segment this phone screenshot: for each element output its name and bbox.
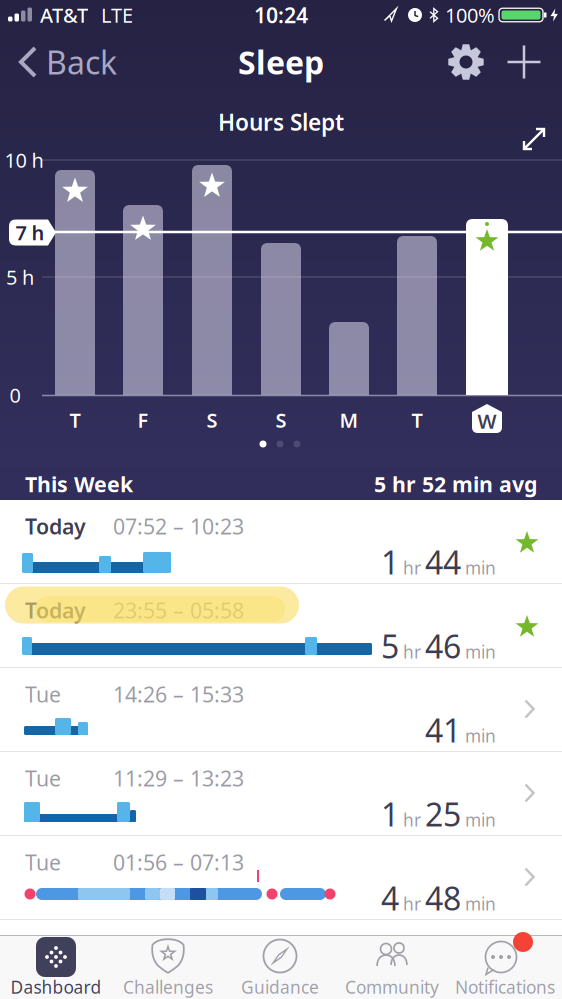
staticText: T: [411, 407, 422, 433]
staticText: S: [206, 407, 217, 433]
staticText: min: [465, 892, 496, 915]
staticText: Tue: [25, 680, 61, 708]
staticText: F: [137, 407, 148, 433]
staticText: min: [465, 808, 496, 831]
button[interactable]: Back: [7, 41, 117, 83]
button[interactable]: Notifications: [449, 935, 561, 999]
staticText: 1: [381, 793, 399, 835]
staticText: Hours Slept: [218, 107, 344, 137]
staticText: 5: [381, 625, 399, 667]
staticText: 10 h: [4, 147, 43, 173]
staticText: min: [465, 556, 496, 579]
staticText: Today: [25, 596, 86, 624]
staticText: Tue: [25, 848, 61, 876]
staticText: min: [465, 724, 496, 747]
staticText: 01:56 – 07:13: [113, 848, 244, 876]
button[interactable]: Guidance: [224, 935, 336, 999]
staticText: This Week: [25, 470, 133, 498]
staticText: Notifications: [455, 975, 555, 998]
staticText: Sleep: [238, 41, 324, 83]
staticText: 11:29 – 13:23: [113, 764, 244, 792]
staticText: Back: [46, 41, 117, 83]
button[interactable]: Settings: [446, 42, 486, 82]
staticText: Dashboard: [10, 975, 101, 998]
button[interactable]: Add: [504, 42, 544, 82]
staticText: Today: [25, 512, 86, 540]
button[interactable]: Tue: [0, 668, 562, 751]
staticText: 07:52 – 10:23: [113, 512, 244, 540]
button[interactable]: Tue: [0, 836, 562, 919]
staticText: 23:55 – 05:58: [113, 596, 244, 624]
staticText: M: [339, 407, 358, 433]
button[interactable]: Today: [0, 500, 562, 583]
staticText: 5 hr 52 min avg: [374, 470, 537, 498]
button[interactable]: Expand chart: [523, 128, 545, 150]
staticText: 44: [425, 541, 461, 583]
staticText: 48: [425, 877, 461, 919]
button[interactable]: Challenges: [112, 935, 224, 999]
button[interactable]: Community: [336, 935, 448, 999]
staticText: AT&T: [40, 2, 88, 28]
staticText: W: [477, 408, 496, 434]
staticText: 1: [381, 541, 399, 583]
staticText: Community: [345, 975, 439, 998]
staticText: S: [275, 407, 286, 433]
staticText: hr: [403, 640, 421, 663]
button[interactable]: Dashboard: [0, 935, 112, 999]
staticText: hr: [403, 892, 421, 915]
staticText: hr: [403, 556, 421, 579]
staticText: 46: [425, 625, 461, 667]
staticText: Challenges: [123, 975, 213, 998]
button[interactable]: Today: [0, 584, 562, 667]
button[interactable]: Tue: [0, 752, 562, 835]
staticText: 25: [425, 793, 461, 835]
staticText: 4: [381, 877, 399, 919]
staticText: 100%: [445, 2, 495, 28]
staticText: Tue: [25, 764, 61, 792]
staticText: 41: [425, 709, 461, 751]
staticText: 10:24: [254, 1, 308, 29]
staticText: 14:26 – 15:33: [113, 680, 244, 708]
staticText: Guidance: [241, 975, 319, 998]
staticText: hr: [403, 808, 421, 831]
staticText: T: [69, 407, 80, 433]
staticText: 0: [9, 382, 20, 408]
staticText: LTE: [101, 2, 133, 28]
staticText: min: [465, 640, 496, 663]
staticText: 5 h: [6, 264, 34, 290]
staticText: 7 h: [15, 219, 44, 246]
